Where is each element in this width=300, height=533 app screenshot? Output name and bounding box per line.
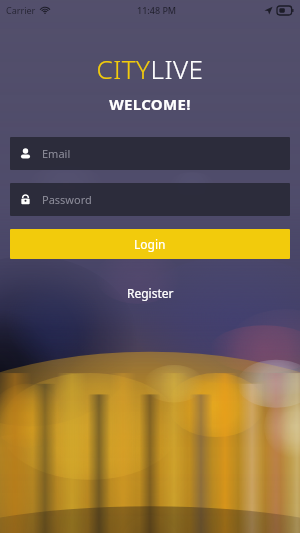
staticText: Email [42, 146, 71, 161]
staticText: Carrier [6, 4, 36, 16]
staticText: 11:48 PM [137, 4, 177, 16]
button[interactable]: Email [10, 137, 290, 170]
button[interactable]: Register [117, 281, 184, 305]
staticText: CITYLIVE [0, 51, 300, 86]
staticText: Register [127, 285, 174, 301]
staticText: Login [134, 236, 166, 252]
staticText: WELCOME! [0, 94, 300, 114]
button[interactable]: Password [10, 183, 290, 216]
staticText: Password [42, 192, 92, 207]
button[interactable]: Login [10, 229, 290, 259]
